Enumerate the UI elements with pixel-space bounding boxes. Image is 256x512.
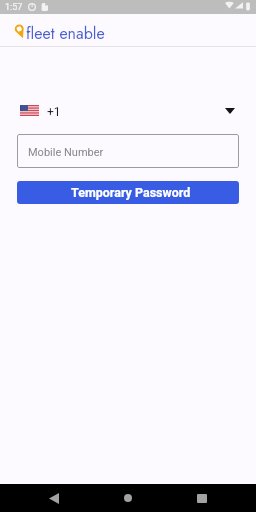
button[interactable]: Back <box>30 484 78 512</box>
button[interactable]: Mobile Number <box>17 134 239 168</box>
staticText: +1 <box>47 105 61 116</box>
staticText: fleet enable <box>26 22 105 45</box>
staticText: Temporary Password <box>71 185 191 200</box>
button[interactable]: Select country code <box>0 105 256 116</box>
button[interactable]: Temporary Password <box>17 181 239 204</box>
staticText: 1:57 <box>5 2 23 13</box>
button[interactable]: Recents <box>178 484 226 512</box>
button[interactable]: Home <box>104 484 152 512</box>
staticText: Mobile Number <box>28 146 104 159</box>
